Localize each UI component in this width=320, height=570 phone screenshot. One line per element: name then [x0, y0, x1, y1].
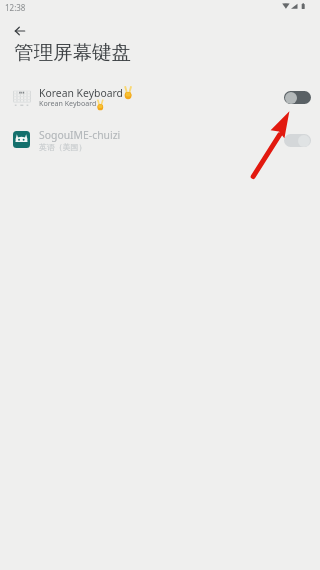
button[interactable]: Korean Keyboard	[0, 79, 320, 122]
staticText: 英语（美国）	[39, 142, 87, 152]
staticText: Korean Keyboard	[39, 98, 97, 108]
button[interactable]: Back	[4, 15, 36, 47]
button[interactable]: Toggle keyboard	[284, 91, 311, 104]
button[interactable]: SogouIME-chuizi	[0, 122, 320, 165]
staticText: 管理屏幕键盘	[14, 40, 131, 65]
button[interactable]: Toggle keyboard	[284, 134, 311, 147]
staticText: Korean Keyboard	[39, 86, 123, 100]
staticText: SogouIME-chuizi	[39, 128, 121, 142]
staticText: 12:38	[5, 2, 26, 13]
